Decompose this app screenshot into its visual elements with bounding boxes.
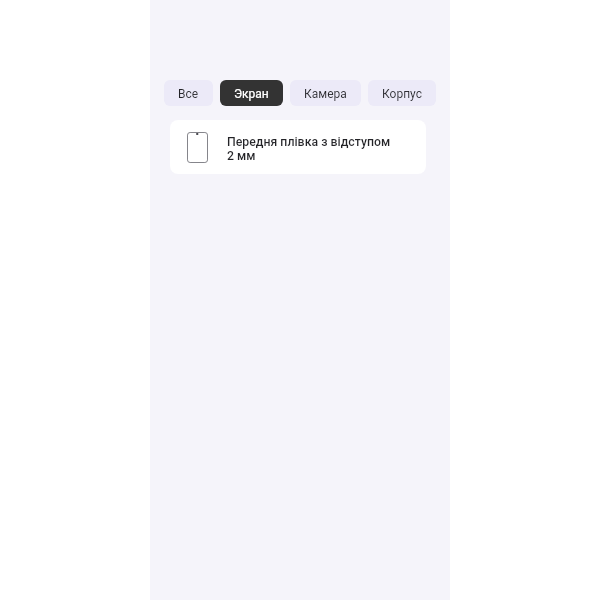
button[interactable]: Все (164, 80, 213, 106)
staticText: Экран (234, 87, 269, 101)
staticText: Корпус (382, 87, 422, 101)
staticText: Передня плівка з відступом 2 мм (227, 135, 391, 163)
button[interactable]: Экран (220, 80, 283, 106)
other: Екран телефона (187, 132, 208, 163)
button[interactable]: Корпус (368, 80, 436, 106)
staticText: Все (178, 87, 199, 101)
button[interactable]: Камера (290, 80, 361, 106)
button[interactable]: Екран телефона (170, 120, 426, 174)
staticText: Камера (304, 87, 347, 101)
